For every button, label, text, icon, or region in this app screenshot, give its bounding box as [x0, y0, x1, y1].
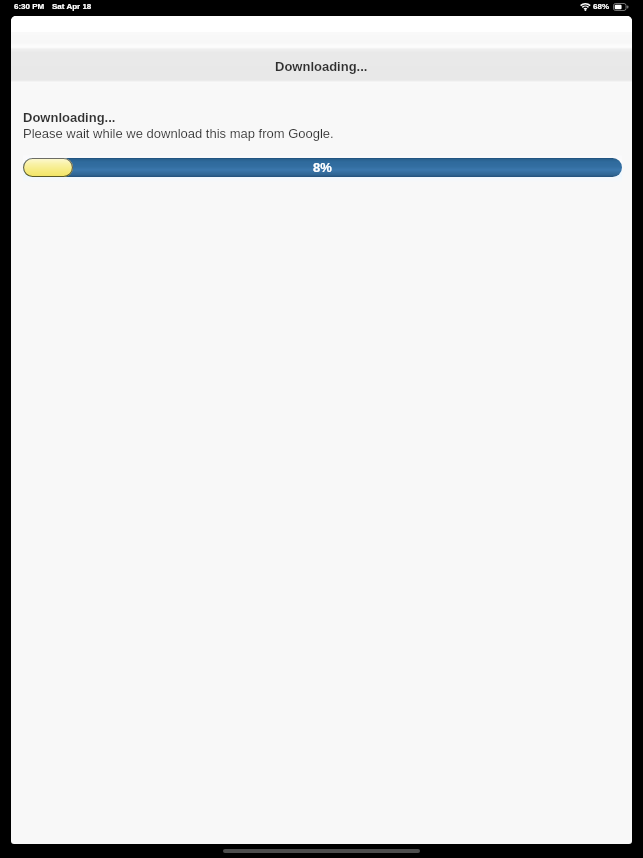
staticText: Downloading... [23, 110, 116, 125]
staticText: Sat Apr 18 [52, 2, 92, 11]
staticText: Downloading... [275, 59, 368, 74]
staticText: 68% [593, 2, 610, 11]
staticText: Please wait while we download this map f… [23, 126, 334, 141]
staticText: 6:30 PM [14, 2, 45, 11]
other: Home indicator [223, 849, 420, 853]
other: Battery 68 percent [613, 3, 629, 11]
staticText: 8% [313, 160, 332, 175]
other: Wi-Fi [580, 3, 590, 11]
button[interactable]: Downloading... [11, 47, 632, 83]
